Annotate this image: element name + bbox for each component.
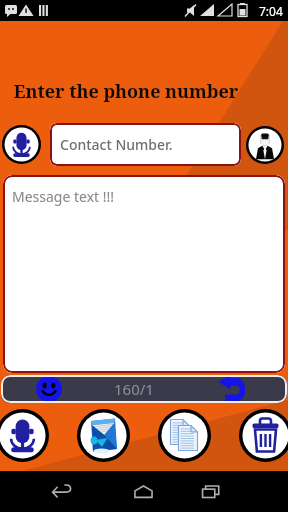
button[interactable]: Message text !!! [3, 175, 285, 373]
staticText: Message text !!! [12, 187, 115, 206]
staticText: Enter the phone number [0, 79, 252, 104]
button[interactable]: Pick contact [246, 126, 284, 164]
staticText: Contact Number. [60, 135, 173, 154]
button[interactable]: Voice input [2, 125, 41, 164]
button[interactable]: Delete [239, 409, 288, 462]
button[interactable]: 160/1 [1, 375, 287, 403]
button[interactable]: Contact Number. [50, 123, 241, 166]
button[interactable]: Recents [185, 471, 237, 512]
button[interactable]: Templates [158, 409, 211, 462]
button[interactable]: Home [117, 471, 169, 512]
staticText: 7:04 [259, 3, 283, 19]
button[interactable]: Back [36, 471, 88, 512]
staticText: 160/1 [114, 379, 154, 399]
button[interactable]: Send message [77, 409, 130, 462]
button[interactable]: Voice message [0, 409, 49, 462]
